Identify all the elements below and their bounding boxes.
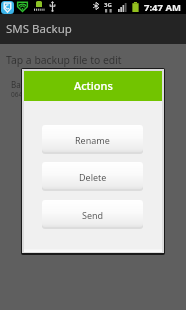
staticText: 7:47 AM (144, 1, 181, 14)
staticText: Backup-2014-06 (11, 79, 72, 90)
button[interactable]: Send (42, 200, 143, 227)
staticText: Actions (74, 78, 113, 93)
button[interactable]: Rename (42, 125, 143, 152)
staticText: 3G (104, 1, 112, 9)
staticText: SMS Backup (6, 21, 72, 37)
staticText: Delete (79, 171, 107, 183)
staticText: Rename (75, 134, 110, 146)
staticText: Send (82, 209, 104, 221)
button[interactable]: Delete (42, 162, 143, 189)
staticText: 064 messages (11, 90, 55, 99)
staticText: Tap a backup file to edit (6, 53, 122, 67)
